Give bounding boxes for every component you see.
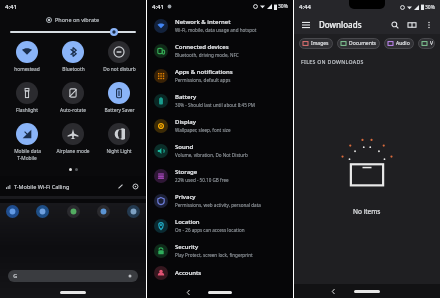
staticText: T-Mobile Wi-Fi Calling [14,183,70,190]
staticText: Bluetooth [62,66,85,73]
staticText: 30% - Should last until about 8:45 PM [175,102,255,108]
staticText: T-Mobile [17,155,37,162]
staticText: On - 26 apps can access location [175,227,245,233]
staticText: Auto-rotate [60,107,86,114]
button[interactable]: T-Mobile Wi-Fi Calling [0,176,146,196]
button[interactable]: Bluetooth [50,41,96,73]
staticText: FILES ON DOWNLOADS [301,58,364,65]
button[interactable]: View mode [406,19,417,30]
staticText: Accounts [175,269,202,277]
staticText: Volume, vibration, Do Not Disturb [175,152,248,158]
button[interactable]: Audio [384,38,414,49]
button[interactable]: Network & internet [147,13,293,38]
staticText: Phone on vibrate [55,16,100,23]
staticText: Permissions, web activity, personal data [175,202,261,208]
button[interactable]: homestead [4,41,50,73]
button[interactable]: App [6,205,19,218]
staticText: Mobile data [14,148,41,155]
staticText: Battery Saver [104,107,135,114]
staticText: 22% used - 50.10 GB free [175,177,229,183]
staticText: Wi-Fi, mobile, data usage and hotspot [175,27,257,33]
button[interactable]: Search [389,19,400,30]
button[interactable]: Vid [418,38,435,49]
button[interactable]: Auto-rotate [50,82,96,114]
button[interactable]: G [8,270,138,282]
staticText: Permissions, default apps [175,77,231,83]
button[interactable]: Images [299,38,333,49]
button[interactable]: More options [423,19,434,30]
button[interactable]: Flashlight [4,82,50,114]
button[interactable]: Display [147,113,293,138]
staticText: Images [311,40,329,47]
staticText: Security [175,243,199,251]
staticText: Documents [349,40,376,47]
staticText: Location [175,218,200,226]
staticText: Audio [396,40,410,47]
staticText: Apps & notifications [175,68,233,76]
button[interactable]: Sound [147,138,293,163]
button[interactable]: Battery Saver [96,82,142,114]
button[interactable]: Security [147,238,293,263]
button[interactable]: Storage [147,163,293,188]
staticText: Airplane mode [56,148,90,155]
button[interactable]: Do not disturb [96,41,142,73]
staticText: Connected devices [175,43,229,51]
staticText: Network & internet [175,18,231,26]
staticText: Night Light [106,148,132,155]
button[interactable]: Battery [147,88,293,113]
button[interactable]: Privacy [147,188,293,213]
button[interactable]: App [36,205,49,218]
button[interactable]: Settings [131,182,140,191]
staticText: Battery [175,93,197,101]
button[interactable]: Apps & notifications [147,63,293,88]
button[interactable]: Menu [300,19,311,30]
staticText: 30% [425,4,435,11]
button[interactable]: App [97,205,110,218]
staticText: 30% [278,3,288,10]
staticText: homestead [14,66,40,73]
button[interactable]: Mobile data [4,123,50,162]
button[interactable]: Edit [116,182,125,191]
staticText: Vid [430,40,431,47]
button[interactable]: App [67,205,80,218]
button[interactable]: Documents [337,38,380,49]
button[interactable]: Location [147,213,293,238]
staticText: 4:44 [299,3,311,11]
button[interactable]: Night Light [96,123,142,155]
button[interactable]: Connected devices [147,38,293,63]
staticText: Storage [175,168,198,176]
staticText: Privacy [175,193,196,201]
staticText: Sound [175,143,194,151]
staticText: Display [175,118,196,126]
staticText: Bluetooth, driving mode, NFC [175,52,239,58]
staticText: Play Protect, screen lock, fingerprint [175,252,253,258]
button[interactable]: Accounts [147,263,293,283]
staticText: 4:41 [152,3,164,11]
staticText: No items [353,207,381,216]
staticText: Wallpaper, sleep, font size [175,127,231,133]
staticText: G [13,272,18,280]
staticText: Do not disturb [103,66,136,73]
button[interactable]: Airplane mode [50,123,96,155]
button[interactable]: App [127,205,140,218]
staticText: Downloads [319,19,362,30]
staticText: 4:41 [5,3,17,11]
staticText: Flashlight [16,107,38,114]
